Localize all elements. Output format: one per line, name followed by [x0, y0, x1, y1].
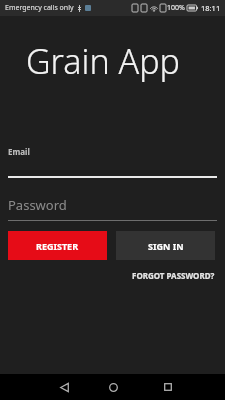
button[interactable]: Recent apps	[154, 374, 182, 400]
staticText: Emergency calls only	[5, 3, 74, 13]
staticText: 18:11	[201, 3, 221, 13]
staticText: REGISTER	[36, 240, 79, 252]
button[interactable]: REGISTER	[8, 231, 107, 260]
staticText: Password	[8, 196, 67, 214]
staticText: FORGOT PASSWORD?	[132, 270, 215, 281]
staticText: Grain App	[26, 38, 180, 84]
button[interactable]: FORGOT PASSWORD?	[130, 268, 217, 283]
button[interactable]: Email	[8, 146, 217, 178]
button[interactable]: Home	[99, 374, 127, 400]
button[interactable]: Password	[8, 196, 217, 221]
button[interactable]: Back	[50, 374, 78, 400]
button[interactable]: SIGN IN	[116, 231, 215, 260]
staticText: SIGN IN	[148, 240, 184, 252]
staticText: Email	[8, 146, 30, 157]
staticText: 100%	[167, 3, 185, 13]
